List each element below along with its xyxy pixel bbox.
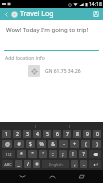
- button[interactable]: %: [37, 140, 46, 148]
- staticText: %: [39, 141, 44, 148]
- staticText: _: [17, 161, 20, 168]
- button[interactable]: 7: [63, 130, 71, 138]
- staticText: ': [42, 151, 44, 158]
- staticText: 8: [76, 131, 79, 138]
- button[interactable]: Back: [15, 170, 29, 183]
- button[interactable]: Home: [45, 170, 59, 183]
- staticText: ?: [82, 151, 85, 158]
- staticText: English: [49, 162, 63, 167]
- button[interactable]: 1: [2, 130, 11, 138]
- button[interactable]: .: [80, 160, 87, 168]
- button[interactable]: 9: [83, 130, 91, 138]
- staticText: -: [63, 141, 65, 148]
- button[interactable]: Get GPS location: [28, 65, 40, 77]
- staticText: 9: [86, 131, 89, 138]
- button[interactable]: ': [39, 150, 47, 158]
- button[interactable]: &: [48, 140, 57, 148]
- button[interactable]: 6: [53, 130, 61, 138]
- staticText: ;: [62, 151, 64, 158]
- staticText: 1/2: [5, 152, 12, 157]
- staticText: ABC: [4, 162, 12, 167]
- button[interactable]: :: [49, 150, 57, 158]
- staticText: (: [85, 141, 87, 148]
- button[interactable]: ;: [59, 150, 67, 158]
- button[interactable]: #: [14, 140, 24, 148]
- button[interactable]: English: [42, 160, 69, 168]
- staticText: 6: [56, 131, 59, 138]
- button[interactable]: -: [59, 140, 68, 148]
- button[interactable]: Navigate up: [2, 10, 10, 18]
- staticText: Travel Log: [20, 9, 54, 19]
- staticText: ): [96, 141, 98, 148]
- button[interactable]: *: [17, 150, 26, 158]
- staticText: 3: [26, 131, 29, 138]
- staticText: ": [31, 151, 34, 158]
- staticText: /: [27, 161, 29, 168]
- staticText: 5: [46, 131, 49, 138]
- staticText: 2: [16, 131, 19, 138]
- button[interactable]: 8: [73, 130, 81, 138]
- staticText: 7: [66, 131, 69, 138]
- button[interactable]: 3: [23, 130, 31, 138]
- button[interactable]: 4: [33, 130, 41, 138]
- staticText: :: [52, 151, 54, 158]
- staticText: +: [73, 141, 76, 148]
- button[interactable]: 5: [43, 130, 51, 138]
- staticText: .: [83, 161, 85, 168]
- staticText: *: [20, 151, 23, 158]
- staticText: ,: [74, 161, 76, 168]
- staticText: GN 61.75 34.26: [45, 68, 81, 75]
- button[interactable]: Backspace: [89, 150, 101, 158]
- button[interactable]: ": [28, 150, 37, 158]
- button[interactable]: _: [15, 160, 22, 168]
- button[interactable]: Enter: [89, 160, 101, 168]
- staticText: Wow! Today I'm going to trip!: [6, 26, 89, 34]
- staticText: Add location info: [5, 55, 45, 62]
- button[interactable]: ABC: [2, 160, 13, 168]
- staticText: 0: [96, 131, 99, 138]
- staticText: !: [72, 151, 74, 158]
- button[interactable]: 0: [93, 130, 101, 138]
- button[interactable]: ?: [79, 150, 87, 158]
- button[interactable]: Save: [91, 9, 101, 19]
- staticText: 1: [5, 131, 8, 138]
- button[interactable]: ): [92, 140, 101, 148]
- staticText: @: [5, 141, 10, 148]
- button[interactable]: $: [26, 140, 35, 148]
- button[interactable]: /: [24, 160, 31, 168]
- button[interactable]: !: [69, 150, 77, 158]
- button[interactable]: Emoji: [33, 160, 40, 168]
- button[interactable]: @: [2, 140, 12, 148]
- button[interactable]: Recent apps: [74, 170, 88, 183]
- staticText: #: [17, 141, 21, 148]
- staticText: &: [51, 141, 55, 148]
- button[interactable]: ,: [71, 160, 78, 168]
- button[interactable]: 1/2: [2, 150, 15, 158]
- button[interactable]: +: [70, 140, 79, 148]
- button[interactable]: 2: [13, 130, 21, 138]
- staticText: 14:18: [89, 1, 102, 8]
- staticText: 4: [36, 131, 39, 138]
- button[interactable]: (: [81, 140, 90, 148]
- staticText: $: [29, 141, 32, 148]
